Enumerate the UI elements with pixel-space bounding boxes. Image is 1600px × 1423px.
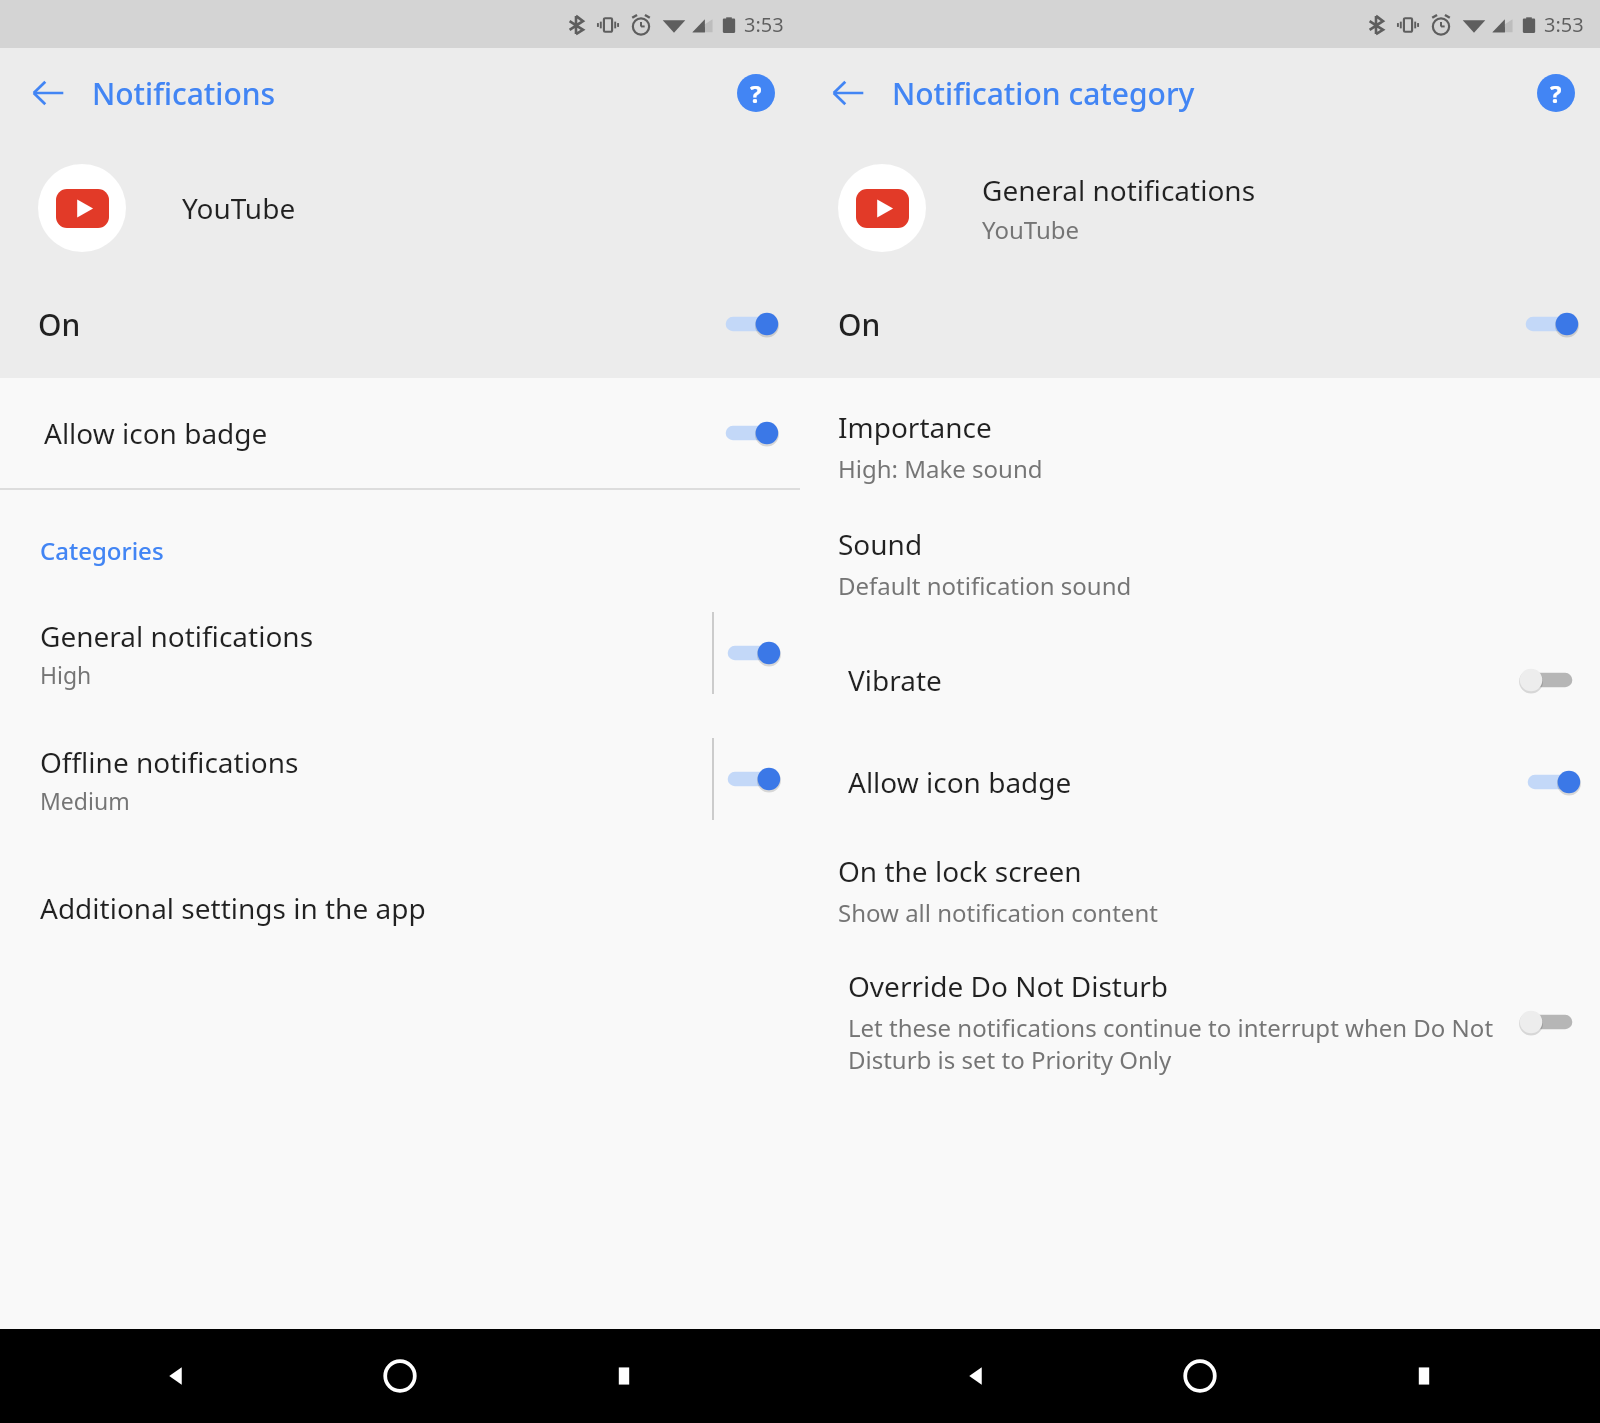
- staticText: Allow icon badge: [848, 763, 1514, 801]
- staticText: Categories: [40, 534, 164, 567]
- button[interactable]: General notifications: [0, 605, 800, 701]
- button[interactable]: Back: [145, 1345, 207, 1407]
- staticText: Offline notifications: [40, 743, 299, 781]
- button[interactable]: Importance: [800, 400, 1600, 493]
- button[interactable]: Allow icon badge: [712, 409, 784, 457]
- button[interactable]: Allow icon badge: [1514, 758, 1586, 806]
- staticText: YouTube: [182, 189, 296, 227]
- staticText: Sound: [838, 525, 923, 563]
- button[interactable]: On: [800, 278, 1600, 370]
- staticText: Notification category: [892, 73, 1195, 114]
- staticText: Let these notifications continue to inte…: [848, 1011, 1502, 1076]
- staticText: Additional settings in the app: [40, 889, 426, 927]
- button[interactable]: Offline notifications: [0, 731, 800, 827]
- button[interactable]: Home: [1169, 1345, 1231, 1407]
- staticText: ?: [750, 77, 762, 110]
- staticText: On the lock screen: [838, 852, 1082, 890]
- button[interactable]: On: [0, 278, 800, 370]
- button[interactable]: On: [712, 300, 784, 348]
- button[interactable]: Recent apps: [593, 1345, 655, 1407]
- staticText: Medium: [40, 785, 130, 816]
- button[interactable]: Vibrate: [1514, 656, 1586, 704]
- staticText: Notifications: [92, 73, 276, 114]
- button[interactable]: Allow icon badge: [800, 738, 1600, 826]
- staticText: Override Do Not Disturb: [848, 967, 1169, 1005]
- button[interactable]: Offline notifications: [714, 755, 786, 803]
- button[interactable]: Allow icon badge: [0, 378, 800, 488]
- staticText: YouTube: [982, 213, 1080, 246]
- staticText: Default notification sound: [838, 569, 1132, 602]
- staticText: On: [838, 304, 1512, 345]
- button[interactable]: Back: [20, 65, 76, 121]
- button[interactable]: General notifications: [714, 629, 786, 677]
- button[interactable]: Override Do Not Disturb: [1514, 998, 1586, 1046]
- button[interactable]: On the lock screen: [800, 844, 1600, 937]
- staticText: General notifications: [40, 617, 314, 655]
- button[interactable]: Recent apps: [1393, 1345, 1455, 1407]
- staticText: ?: [1550, 77, 1562, 110]
- staticText: 3:53: [744, 11, 784, 38]
- button[interactable]: Back: [945, 1345, 1007, 1407]
- button[interactable]: Vibrate: [800, 636, 1600, 724]
- staticText: High: [40, 659, 92, 690]
- staticText: Allow icon badge: [44, 414, 712, 452]
- staticText: Show all notification content: [838, 896, 1158, 929]
- staticText: 3:53: [1544, 11, 1584, 38]
- button[interactable]: Help: [1530, 67, 1582, 119]
- button[interactable]: Additional settings in the app: [0, 873, 800, 943]
- staticText: Importance: [838, 408, 992, 446]
- button[interactable]: Back: [820, 65, 876, 121]
- staticText: High: Make sound: [838, 452, 1043, 485]
- staticText: Vibrate: [848, 661, 1514, 699]
- button[interactable]: Home: [369, 1345, 431, 1407]
- staticText: On: [38, 304, 712, 345]
- button[interactable]: Sound: [800, 517, 1600, 610]
- button[interactable]: Override Do Not Disturb: [800, 967, 1600, 1076]
- button[interactable]: On: [1512, 300, 1584, 348]
- button[interactable]: Help: [730, 67, 782, 119]
- staticText: General notifications: [982, 171, 1256, 209]
